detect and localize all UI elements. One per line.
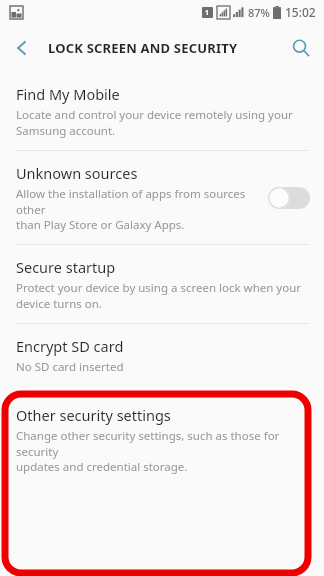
- staticText: LOCK SCREEN AND SECURITY: [48, 39, 238, 57]
- button[interactable]: Encrypt SD card: [0, 324, 324, 387]
- button[interactable]: Other security settings: [0, 391, 324, 488]
- staticText: Allow the installation of apps from sour…: [16, 186, 262, 232]
- staticText: Protect your device by using a screen lo…: [16, 280, 302, 311]
- button[interactable]: Secure startup: [0, 245, 324, 323]
- button[interactable]: Unknown sources: [0, 151, 324, 244]
- staticText: 87%: [248, 5, 270, 20]
- staticText: No SD card inserted: [16, 359, 124, 375]
- staticText: Locate and control your device remotely …: [16, 107, 293, 138]
- staticText: Secure startup: [16, 257, 116, 277]
- staticText: Other security settings: [16, 405, 171, 425]
- staticText: Encrypt SD card: [16, 336, 124, 356]
- staticText: 15:02: [285, 4, 316, 20]
- button[interactable]: Find My Mobile: [0, 72, 324, 150]
- button[interactable]: Unknown sources toggle: [268, 187, 310, 209]
- staticText: 1: [205, 8, 210, 18]
- staticText: Change other security settings, such as …: [16, 428, 308, 474]
- button[interactable]: Back: [0, 26, 44, 70]
- staticText: Unknown sources: [16, 163, 138, 183]
- staticText: Find My Mobile: [16, 84, 120, 104]
- button[interactable]: Search: [278, 25, 324, 71]
